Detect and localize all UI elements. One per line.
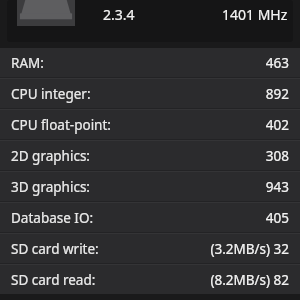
staticText: SD card write: (11, 240, 99, 258)
button[interactable]: 2D graphics: (0, 141, 300, 170)
button[interactable]: 3D graphics: (0, 172, 300, 201)
button[interactable]: CPU integer: (0, 79, 300, 108)
staticText: 405 (265, 209, 289, 227)
staticText: 1401 MHz (222, 5, 288, 24)
staticText: Database IO: (11, 209, 94, 227)
staticText: CPU integer: (11, 85, 91, 103)
staticText: RAM: (11, 54, 44, 72)
button[interactable]: Database IO: (0, 203, 300, 232)
button[interactable]: SD card write: (0, 234, 300, 263)
button[interactable]: SD card read: (0, 265, 300, 294)
staticText: (3.2MB/s) 32 (210, 240, 289, 258)
staticText: SD card read: (11, 271, 96, 289)
staticText: 943 (265, 178, 289, 196)
staticText: 463 (265, 54, 289, 72)
other: Device icon (17, 0, 75, 26)
button[interactable]: Device icon (7, 0, 293, 42)
button[interactable]: RAM: (0, 48, 300, 77)
staticText: 402 (265, 116, 289, 134)
staticText: CPU float-point: (11, 116, 111, 134)
staticText: (8.2MB/s) 82 (210, 271, 289, 289)
staticText: 2.3.4 (103, 5, 135, 24)
staticText: 892 (265, 85, 289, 103)
staticText: 3D graphics: (11, 178, 90, 196)
button[interactable]: CPU float-point: (0, 110, 300, 139)
staticText: 308 (265, 147, 289, 165)
staticText: 2D graphics: (11, 147, 90, 165)
